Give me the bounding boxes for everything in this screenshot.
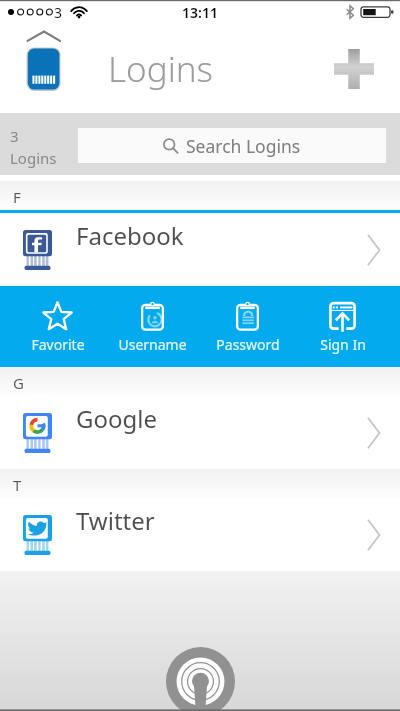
staticText: 3	[10, 126, 19, 146]
staticText: Logins	[10, 148, 57, 168]
staticText: Username	[118, 335, 187, 354]
staticText: Google	[76, 402, 157, 435]
staticText: G	[13, 373, 24, 393]
button[interactable]: Password	[200, 286, 295, 367]
staticText: Favorite	[31, 335, 85, 354]
button[interactable]: Google	[0, 396, 400, 469]
button[interactable]: Search Logins	[78, 128, 386, 163]
staticText: T	[13, 475, 22, 495]
staticText: Search Logins	[186, 134, 301, 158]
staticText: Password	[216, 335, 280, 354]
staticText: F	[13, 187, 21, 207]
button[interactable]: Username	[105, 286, 200, 367]
staticText: Twitter	[76, 504, 155, 537]
button[interactable]: Facebook	[0, 213, 400, 286]
staticText: 3	[54, 3, 63, 22]
button[interactable]: Twitter	[0, 498, 400, 571]
staticText: Sign In	[320, 335, 366, 354]
staticText: 13:11	[182, 3, 218, 22]
staticText: Facebook	[76, 219, 184, 252]
button[interactable]: Add login	[330, 44, 378, 92]
staticText: Logins	[108, 45, 213, 93]
button[interactable]: Favorite	[10, 286, 105, 367]
button[interactable]: Sign In	[295, 286, 390, 367]
